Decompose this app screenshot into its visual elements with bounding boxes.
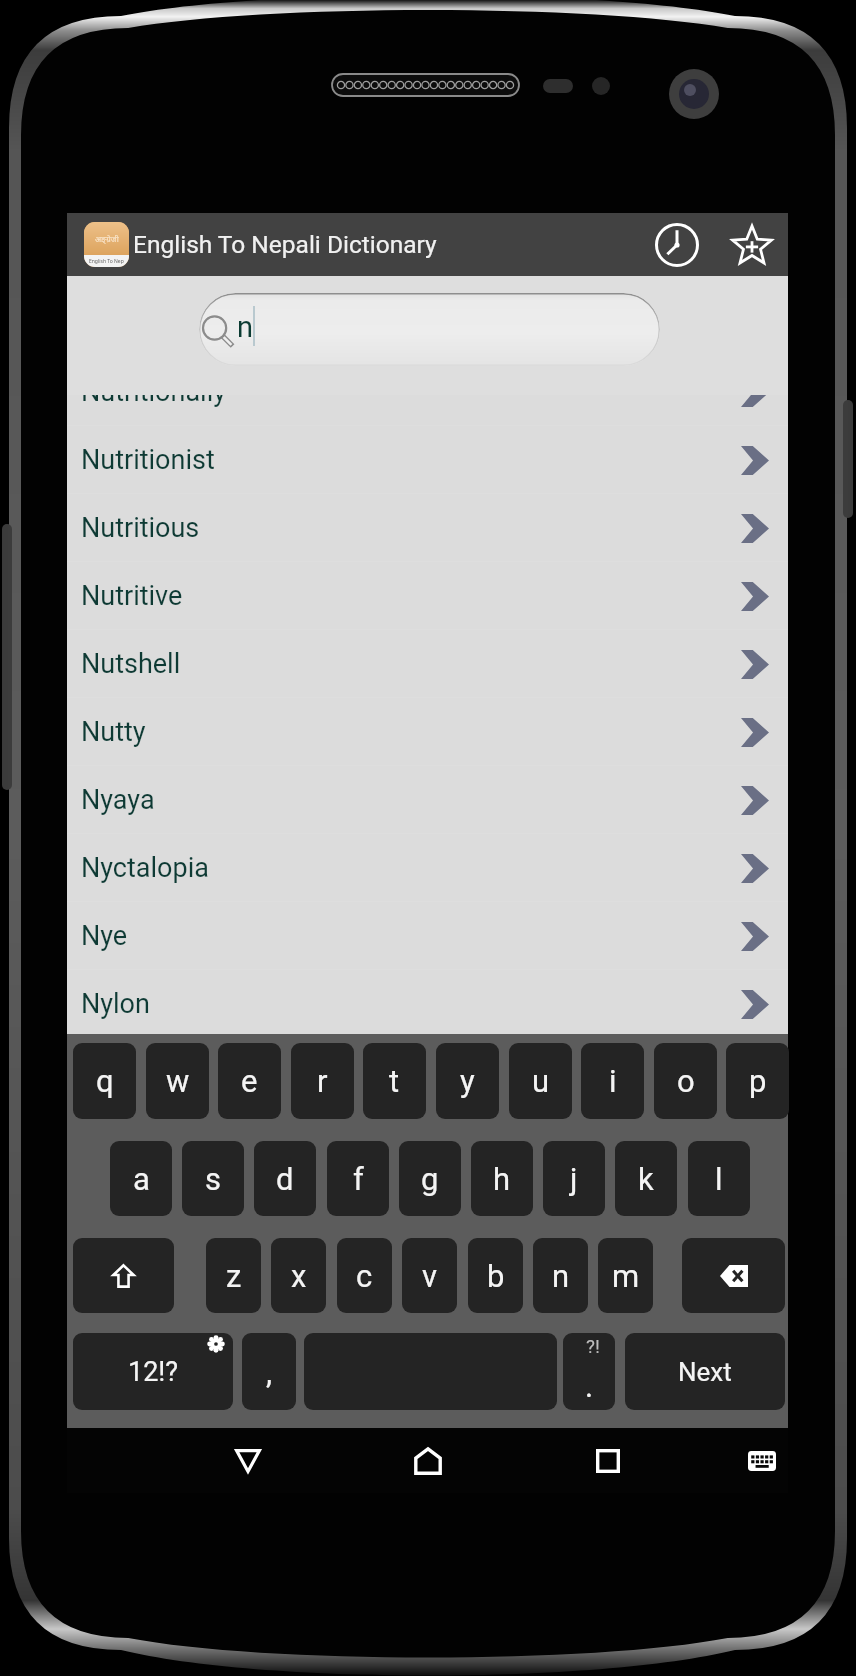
staticText: . xyxy=(585,1368,594,1404)
staticText: v xyxy=(422,1258,438,1294)
button[interactable] xyxy=(304,1333,557,1410)
button[interactable]: Home xyxy=(394,1428,462,1493)
button[interactable]: Nutritious xyxy=(67,494,788,562)
staticText: o xyxy=(677,1063,695,1099)
staticText: i xyxy=(609,1063,617,1099)
button[interactable]: b xyxy=(468,1238,523,1313)
button[interactable]: x xyxy=(271,1238,326,1313)
button[interactable]: j xyxy=(543,1141,605,1216)
staticText: Nutritious xyxy=(81,512,200,544)
staticText: x xyxy=(291,1258,307,1294)
staticText: Nye xyxy=(81,920,128,952)
staticText: c xyxy=(356,1258,373,1294)
button[interactable]: w xyxy=(146,1043,209,1119)
staticText: English To Nepali Dictionary xyxy=(133,230,437,259)
button[interactable]: Nyaya xyxy=(67,766,788,834)
button[interactable]: Back xyxy=(214,1428,282,1493)
button[interactable]: Nutty xyxy=(67,698,788,766)
button[interactable]: u xyxy=(509,1043,572,1119)
staticText: Nutritive xyxy=(81,580,183,612)
staticText: Nutritionist xyxy=(81,444,215,476)
button[interactable]: Nutshell xyxy=(67,630,788,698)
button[interactable]: t xyxy=(363,1043,426,1119)
staticText: f xyxy=(353,1161,364,1197)
button[interactable]: Nye xyxy=(67,902,788,970)
button[interactable]: i xyxy=(581,1043,644,1119)
staticText: , xyxy=(266,1354,273,1390)
button[interactable] xyxy=(682,1238,785,1313)
staticText: z xyxy=(226,1258,242,1294)
staticText: n xyxy=(237,310,254,344)
button[interactable]: f xyxy=(327,1141,389,1216)
staticText: g xyxy=(421,1161,439,1197)
button[interactable]: g xyxy=(399,1141,461,1216)
button[interactable]: m xyxy=(598,1238,653,1313)
staticText: h xyxy=(493,1161,511,1197)
staticText: Nutritionally xyxy=(81,395,226,408)
staticText: r xyxy=(317,1063,328,1099)
staticText: u xyxy=(532,1063,550,1099)
staticText: English To Nep xyxy=(89,258,124,265)
staticText: e xyxy=(241,1063,258,1099)
button[interactable]: o xyxy=(654,1043,717,1119)
staticText: n xyxy=(552,1258,570,1294)
button[interactable]: , xyxy=(242,1333,296,1410)
button[interactable]: z xyxy=(206,1238,261,1313)
staticText: Nyctalopia xyxy=(81,852,209,884)
button[interactable]: r xyxy=(291,1043,354,1119)
staticText: s xyxy=(205,1161,221,1197)
staticText: a xyxy=(133,1161,150,1197)
staticText: p xyxy=(749,1063,767,1099)
staticText: Nutty xyxy=(81,716,146,748)
button[interactable]: l xyxy=(688,1141,750,1216)
staticText: Nylon xyxy=(81,988,150,1020)
staticText: w xyxy=(166,1063,190,1099)
button[interactable]: Add to favourites xyxy=(720,213,786,276)
button[interactable]: Change keyboard xyxy=(728,1428,796,1493)
button[interactable]: Recent history xyxy=(644,213,720,276)
staticText: 12!? xyxy=(128,1356,179,1388)
staticText: j xyxy=(570,1161,578,1197)
button[interactable]: v xyxy=(402,1238,457,1313)
button[interactable]: n xyxy=(199,293,660,366)
button[interactable]: Recent apps xyxy=(574,1428,642,1493)
staticText: Nyaya xyxy=(81,784,155,816)
button[interactable]: e xyxy=(218,1043,281,1119)
button[interactable]: ?! xyxy=(563,1333,615,1410)
button[interactable]: a xyxy=(110,1141,172,1216)
staticText: ?! xyxy=(586,1335,600,1357)
button[interactable]: s xyxy=(182,1141,244,1216)
button[interactable]: y xyxy=(436,1043,499,1119)
staticText: d xyxy=(276,1161,294,1197)
button[interactable]: Nutritionally xyxy=(67,395,788,426)
button[interactable]: d xyxy=(254,1141,316,1216)
button[interactable]: h xyxy=(471,1141,533,1216)
staticText: m xyxy=(612,1258,640,1294)
button[interactable]: c xyxy=(337,1238,392,1313)
button[interactable]: Next xyxy=(625,1333,785,1410)
staticText: Nutshell xyxy=(81,648,181,680)
button[interactable]: Nylon xyxy=(67,970,788,1034)
button[interactable]: Nutritionist xyxy=(67,426,788,494)
button[interactable]: q xyxy=(73,1043,136,1119)
button[interactable]: k xyxy=(615,1141,677,1216)
staticText: t xyxy=(389,1063,400,1099)
button[interactable] xyxy=(73,1238,174,1313)
staticText: l xyxy=(715,1161,723,1197)
staticText: y xyxy=(460,1063,475,1099)
staticText: Next xyxy=(678,1357,732,1387)
button[interactable]: 12!? xyxy=(73,1333,233,1410)
button[interactable]: n xyxy=(533,1238,588,1313)
staticText: b xyxy=(487,1258,505,1294)
staticText: अङ्ग्रेजी xyxy=(95,233,119,244)
staticText: q xyxy=(96,1063,114,1099)
button[interactable]: p xyxy=(726,1043,789,1119)
staticText: k xyxy=(638,1161,654,1197)
button[interactable]: Nyctalopia xyxy=(67,834,788,902)
button[interactable]: Nutritive xyxy=(67,562,788,630)
